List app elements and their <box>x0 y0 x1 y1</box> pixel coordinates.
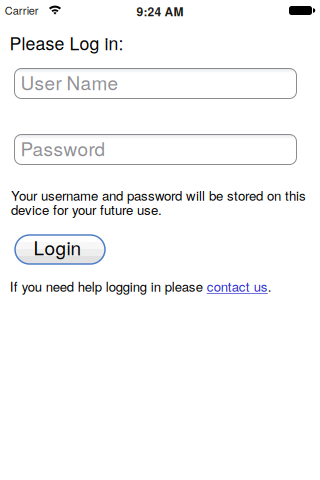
button[interactable]: User Name <box>14 68 297 99</box>
staticText: Password <box>20 138 105 158</box>
button[interactable]: contact us <box>207 279 268 293</box>
staticText: Carrier <box>5 4 39 16</box>
button[interactable]: Password <box>14 134 297 165</box>
staticText: 9:24 AM <box>136 5 183 18</box>
staticText: contact us <box>207 279 268 293</box>
staticText: User Name <box>20 72 118 92</box>
staticText: If you need help logging in please <box>10 279 207 293</box>
staticText: . <box>268 279 272 293</box>
staticText: Please Log in: <box>9 33 123 52</box>
staticText: Login <box>33 237 81 257</box>
button[interactable]: Login <box>15 235 105 264</box>
staticText: Your username and password will be store… <box>11 188 306 216</box>
